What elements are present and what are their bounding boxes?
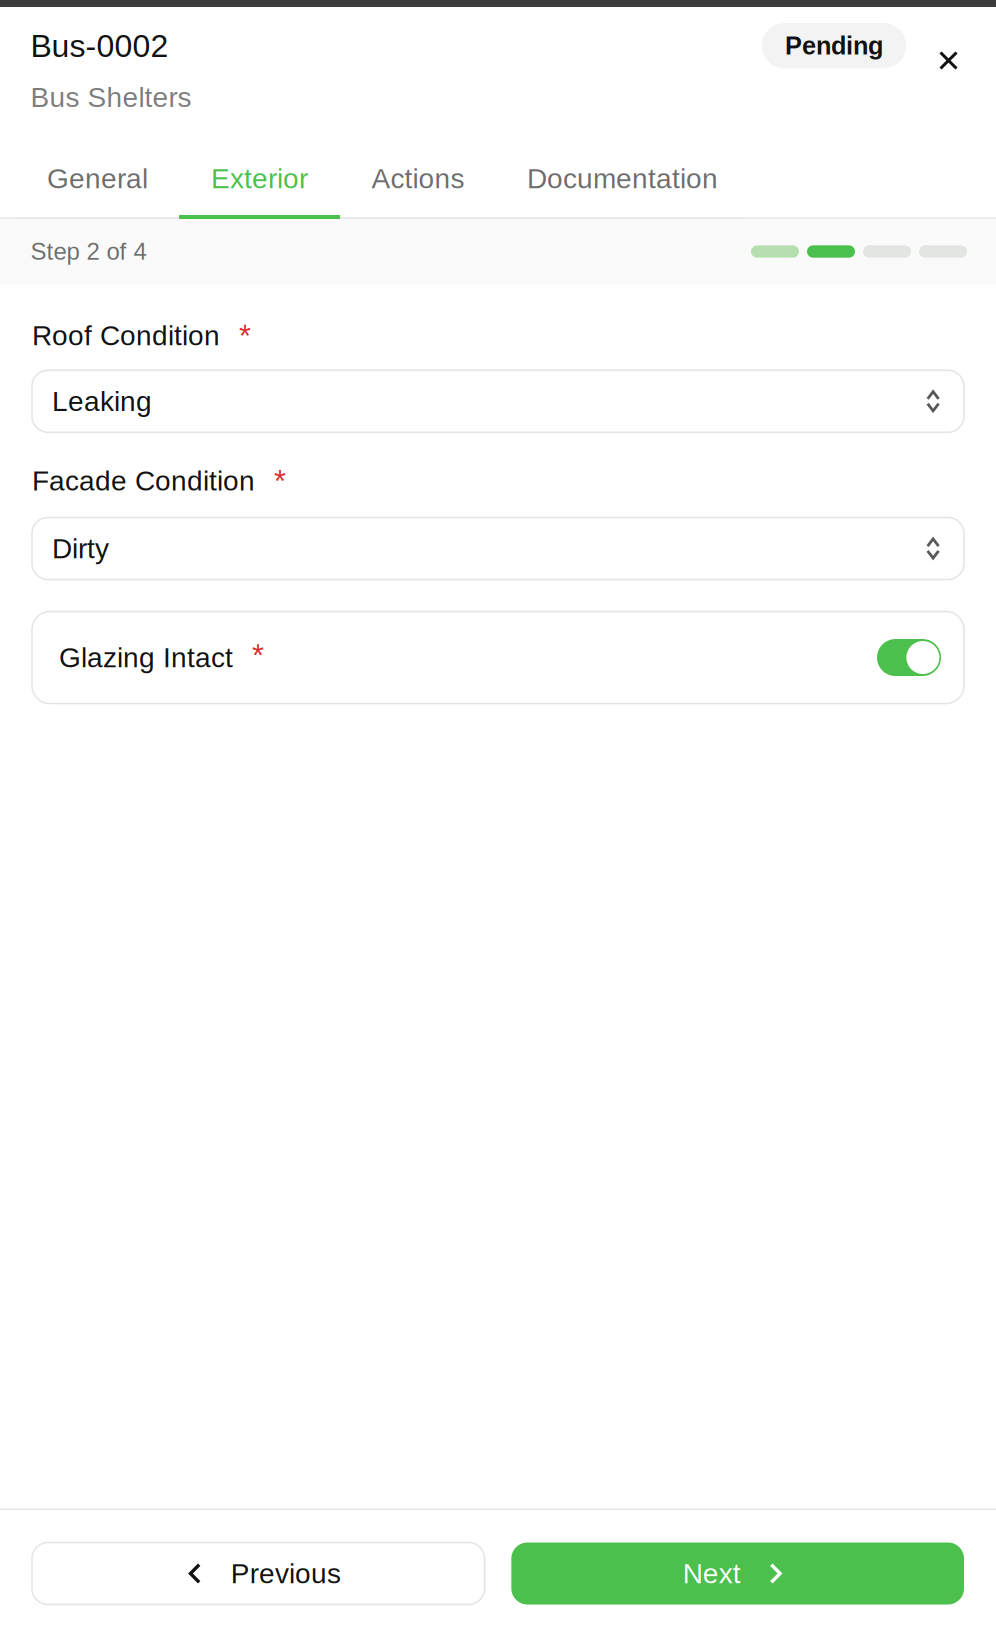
staticText: Dirty xyxy=(52,533,109,564)
button[interactable]: Dirty xyxy=(32,517,964,579)
button[interactable]: Next xyxy=(511,1542,964,1604)
staticText: Roof Condition xyxy=(32,320,220,351)
button[interactable]: Actions xyxy=(340,142,496,219)
staticText: Exterior xyxy=(211,163,308,194)
staticText: General xyxy=(47,163,148,194)
button[interactable]: Close xyxy=(923,37,974,84)
button[interactable]: Pending xyxy=(762,23,906,68)
button[interactable]: General xyxy=(16,142,179,219)
staticText: * xyxy=(252,638,264,673)
staticText: Pending xyxy=(785,31,883,60)
button[interactable]: Documentation xyxy=(496,142,749,219)
button[interactable]: Glazing Intact xyxy=(32,611,964,703)
staticText: Step 2 of 4 xyxy=(30,238,146,265)
staticText: Leaking xyxy=(52,386,152,417)
button[interactable]: Leaking xyxy=(32,370,964,432)
staticText: Bus-0002 xyxy=(30,28,168,64)
staticText: Bus Shelters xyxy=(30,82,191,113)
staticText: Next xyxy=(683,1558,741,1589)
staticText: * xyxy=(274,464,286,499)
staticText: * xyxy=(239,319,251,353)
staticText: Facade Condition xyxy=(32,465,255,496)
staticText: Glazing Intact xyxy=(59,642,233,673)
button[interactable]: Previous xyxy=(32,1542,485,1604)
staticText: Documentation xyxy=(527,163,718,194)
staticText: Actions xyxy=(371,163,464,194)
button[interactable]: Exterior xyxy=(179,142,340,219)
staticText: Previous xyxy=(231,1558,341,1589)
